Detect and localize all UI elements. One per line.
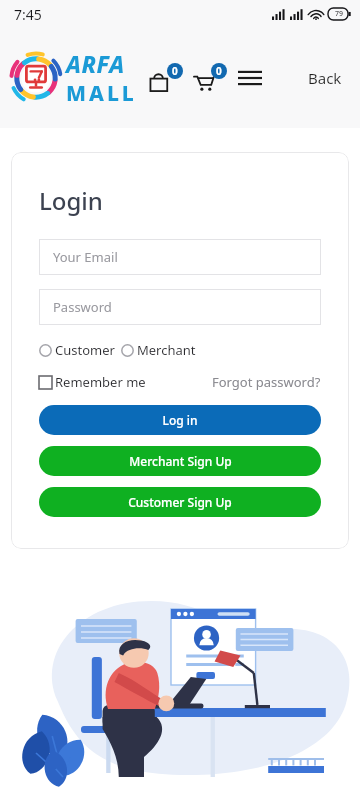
button[interactable]: Merchant Sign Up	[39, 446, 321, 476]
button[interactable]: Log in	[39, 405, 321, 435]
button[interactable]: Your Email	[39, 239, 321, 275]
staticText: 0	[216, 64, 222, 78]
staticText: Your Email	[53, 248, 118, 266]
button[interactable]: Customer	[39, 341, 115, 359]
button[interactable]: Customer Sign Up	[39, 487, 321, 517]
button[interactable]: Remember me	[39, 373, 146, 391]
staticText: Forgot password?	[212, 373, 321, 391]
staticText: Customer	[55, 341, 115, 359]
button[interactable]: Cart	[193, 63, 227, 93]
button[interactable]: Bag	[149, 63, 183, 93]
staticText: Log in	[162, 412, 198, 428]
button[interactable]: Merchant	[121, 341, 196, 359]
staticText: Login	[39, 184, 103, 217]
staticText: MALL	[66, 79, 137, 108]
button[interactable]: Back	[302, 62, 348, 94]
staticText: ARFA	[66, 48, 125, 79]
staticText: Customer Sign Up	[128, 494, 232, 510]
staticText: Remember me	[55, 373, 146, 391]
button[interactable]: Menu	[235, 63, 265, 93]
staticText: 0	[172, 64, 178, 78]
button[interactable]: Arfa Mall logo	[10, 52, 62, 104]
staticText: 7:45	[14, 5, 42, 24]
staticText: Password	[53, 298, 112, 316]
button[interactable]: Password	[39, 289, 321, 325]
staticText: 79	[335, 9, 344, 19]
staticText: Back	[308, 68, 342, 88]
staticText: Merchant Sign Up	[129, 453, 232, 469]
staticText: Merchant	[137, 341, 196, 359]
button[interactable]: Forgot password?	[212, 373, 321, 391]
